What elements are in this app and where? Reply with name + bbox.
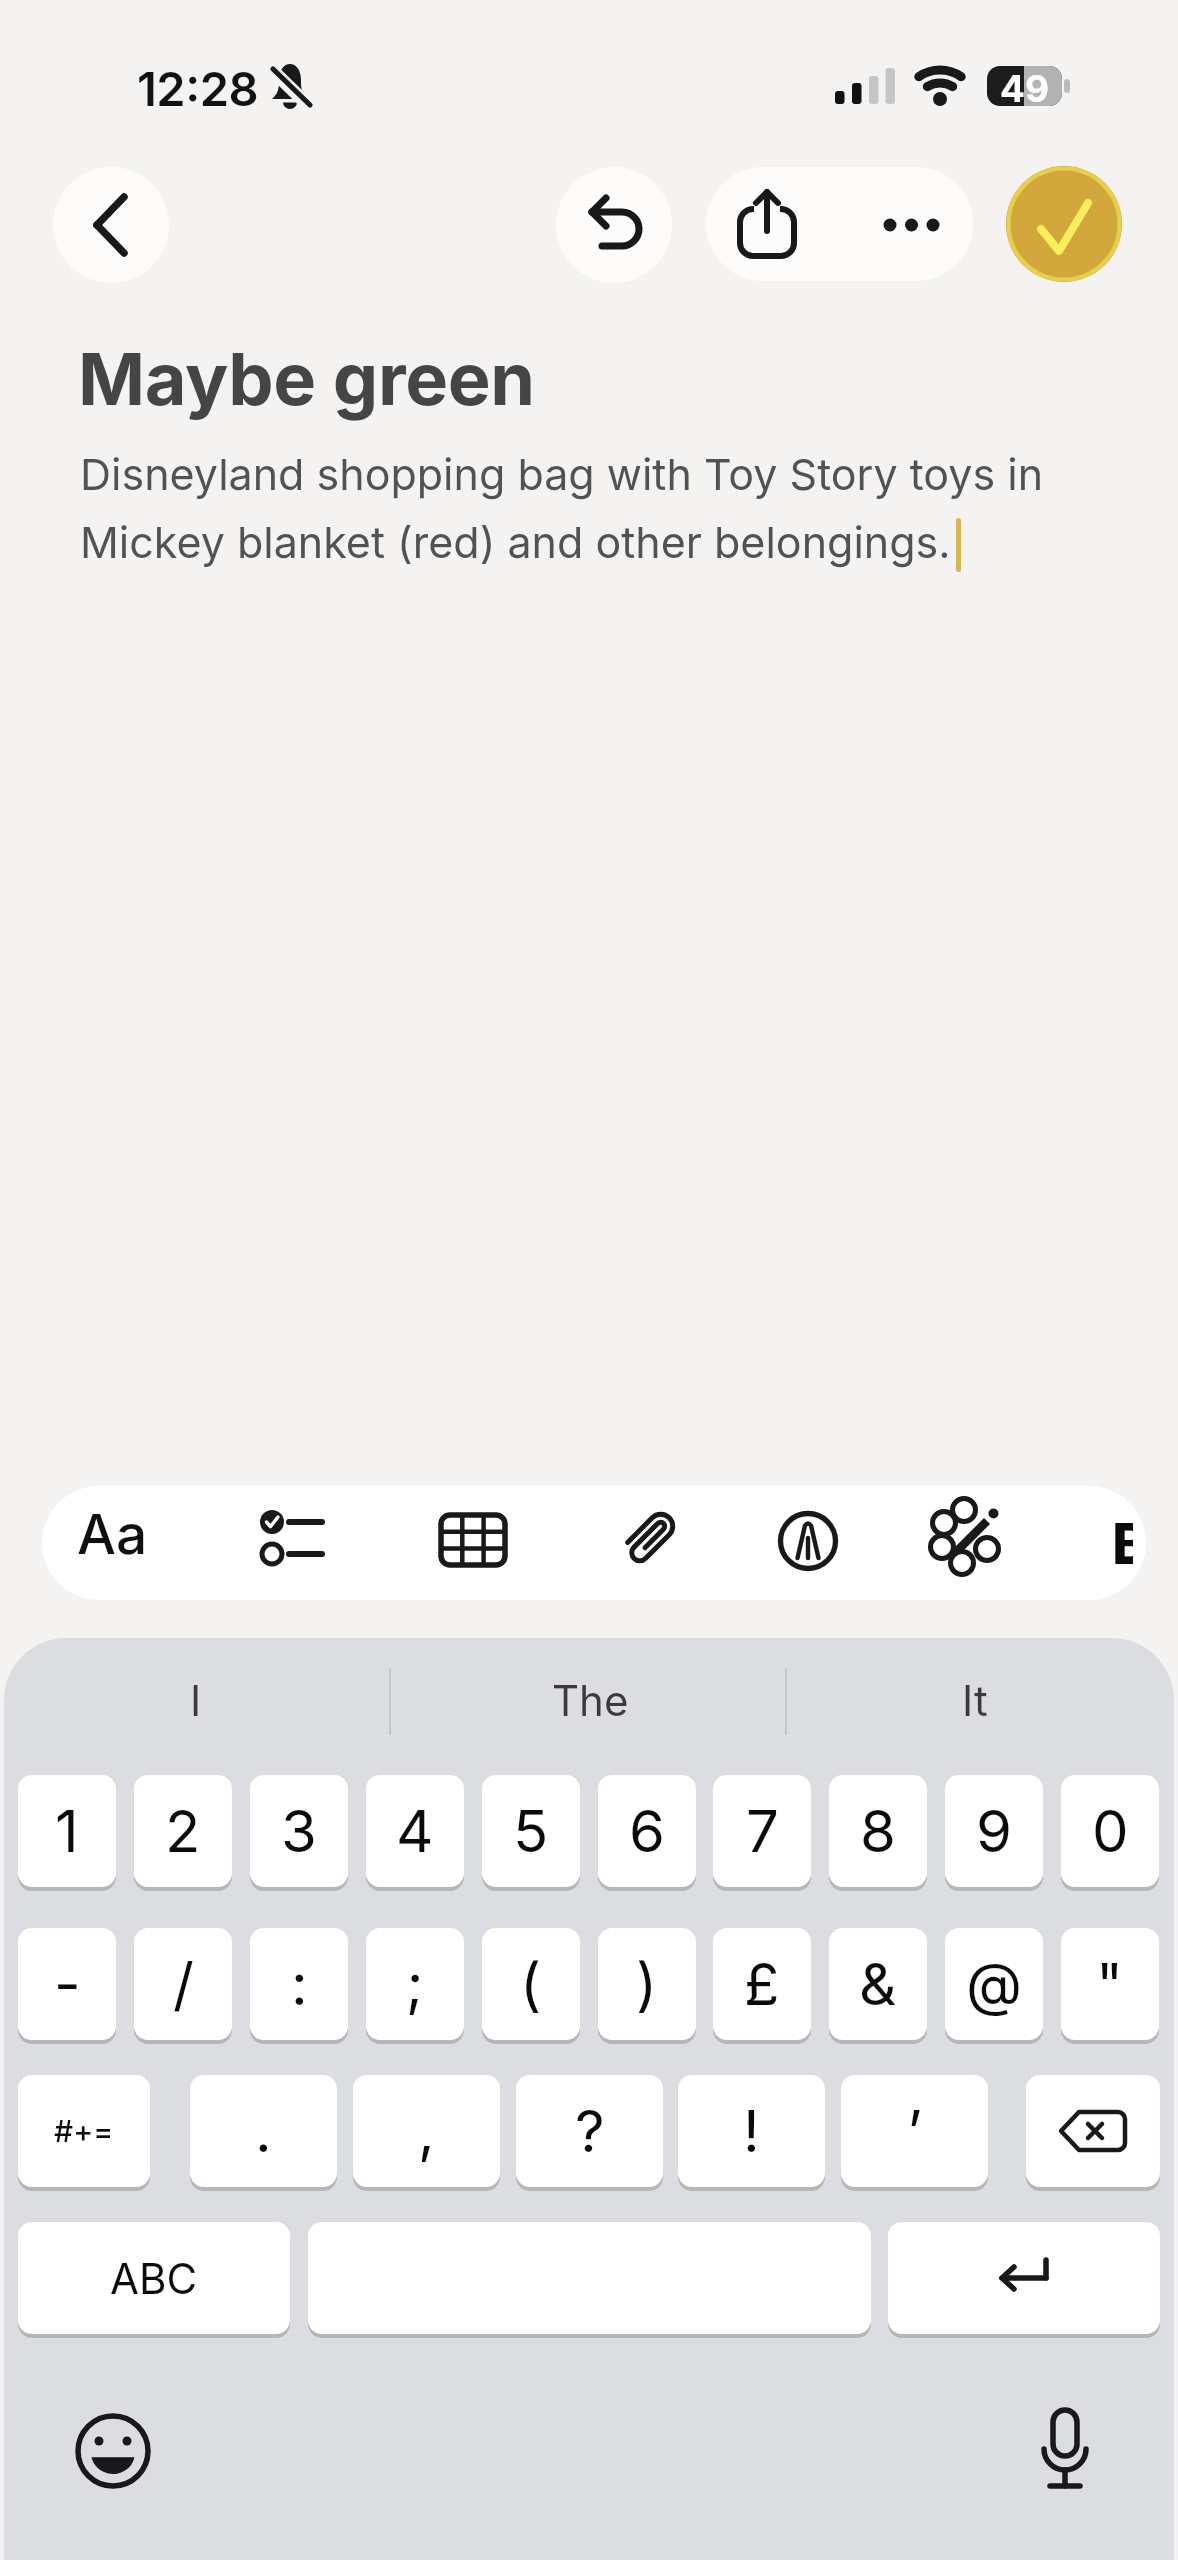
staticText: The [552,1675,629,1726]
staticText: . [255,2096,272,2166]
button[interactable]: Aa [56,1486,176,1600]
button[interactable] [888,2222,1160,2338]
staticText: I [190,1675,202,1726]
button[interactable] [308,2222,871,2338]
button[interactable]: : [250,1928,348,2044]
button[interactable]: 1 [18,1775,116,1891]
button[interactable]: & [829,1928,927,2044]
button[interactable]: ) [598,1928,696,2044]
button[interactable]: 7 [713,1775,811,1891]
button[interactable] [255,1505,330,1571]
button[interactable]: 0 [1061,1775,1159,1891]
staticText: / [173,1949,194,2019]
button[interactable]: I [80,1662,312,1738]
staticText: 0 [1092,1796,1129,1866]
staticText: ; [406,1949,424,2019]
staticText: 8 [860,1796,896,1866]
staticText: £ [744,1949,780,2019]
staticText: 9 [976,1796,1012,1866]
button[interactable] [778,1511,838,1571]
button[interactable]: 6 [598,1775,696,1891]
staticText: ) [636,1949,658,2019]
staticText: Mickey blanket (red) and other belonging… [80,516,951,568]
button[interactable]: ! [678,2075,825,2191]
button[interactable]: ? [516,2075,663,2191]
button[interactable]: £ [713,1928,811,2044]
staticText: 7 [746,1796,779,1866]
staticText: ( [520,1949,542,2019]
staticText: 12:28 [137,60,259,117]
button[interactable]: ’ [841,2075,988,2191]
staticText: @ [966,1949,1023,2019]
button[interactable]: 9 [945,1775,1043,1891]
button[interactable] [726,167,840,281]
button[interactable] [75,2413,151,2489]
button[interactable]: ( [482,1928,580,2044]
staticText: ’ [907,2096,923,2166]
staticText: 5 [513,1796,549,1866]
button[interactable] [931,1500,1007,1576]
button[interactable]: 8 [829,1775,927,1891]
button[interactable] [53,167,169,283]
button[interactable]: #+= [18,2075,150,2191]
button[interactable]: It [859,1662,1091,1738]
staticText: ? [575,2096,605,2166]
button[interactable]: 4 [366,1775,464,1891]
staticText: B [1112,1510,1133,1572]
button[interactable] [1026,2075,1160,2191]
staticText: It [962,1675,988,1726]
button[interactable]: , [353,2075,500,2191]
staticText: Disneyland shopping bag with Toy Story t… [80,448,1044,500]
staticText: 4 [396,1796,434,1866]
button[interactable] [556,167,672,283]
staticText: #+= [54,2113,114,2149]
button[interactable]: ; [366,1928,464,2044]
staticText: ! [743,2096,760,2166]
button[interactable]: B [1112,1510,1133,1572]
button[interactable] [1030,2406,1100,2498]
button[interactable] [856,167,973,281]
button[interactable]: - [18,1928,116,2044]
button[interactable]: 5 [482,1775,580,1891]
staticText: " [1096,1949,1124,2019]
button[interactable]: " [1061,1928,1159,2044]
staticText: 6 [629,1796,665,1866]
staticText: , [418,2096,435,2166]
button[interactable] [1006,166,1122,282]
button[interactable]: 3 [250,1775,348,1891]
staticText: Aa [77,1501,148,1568]
button[interactable] [438,1512,508,1574]
button[interactable]: / [134,1928,232,2044]
button[interactable] [616,1507,680,1571]
button[interactable]: 2 [134,1775,232,1891]
staticText: : [291,1949,308,2019]
staticText: & [859,1949,897,2019]
staticText: 2 [165,1796,201,1866]
button[interactable]: ABC [18,2222,290,2338]
staticText: 3 [281,1796,317,1866]
button[interactable]: @ [945,1928,1043,2044]
staticText: 49 [1000,66,1050,106]
button[interactable]: The [474,1662,706,1738]
staticText: ABC [110,2253,198,2304]
staticText: Maybe green [78,335,535,422]
staticText: - [54,1949,81,2019]
button[interactable]: . [190,2075,337,2191]
staticText: 1 [55,1796,79,1866]
